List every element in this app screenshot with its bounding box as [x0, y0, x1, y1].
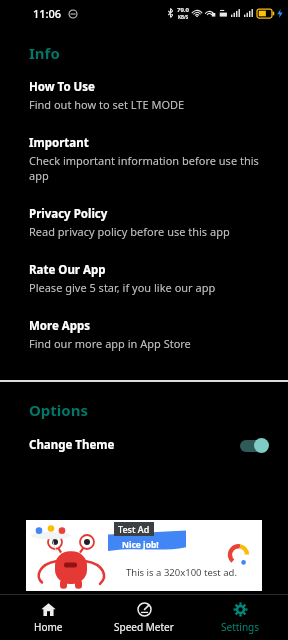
button[interactable]: Home	[0, 595, 96, 640]
staticText: Test Ad	[118, 523, 150, 535]
staticText: This is a 320x100 test ad.	[126, 566, 237, 579]
staticText: Settings	[221, 620, 260, 634]
button[interactable]: Privacy Policy	[0, 206, 288, 239]
staticText: Rate Our App	[29, 262, 106, 278]
staticText: KB/S	[178, 14, 189, 20]
button[interactable]: Change Theme	[0, 429, 288, 461]
staticText: Read privacy policy before use this app	[29, 224, 230, 239]
staticText: 11:06	[33, 6, 62, 21]
staticText: 79.0	[177, 6, 189, 14]
staticText: Options	[29, 400, 88, 420]
staticText: Find our more app in App Store	[29, 336, 191, 351]
button[interactable]: Important	[0, 135, 288, 183]
button[interactable]: More Apps	[0, 318, 288, 351]
staticText: How To Use	[29, 79, 95, 95]
staticText: Home	[34, 620, 63, 634]
staticText: Check important information before use t…	[29, 153, 259, 183]
staticText: Please give 5 star, if you like our app	[29, 280, 216, 295]
staticText: Speed Meter	[114, 620, 174, 634]
staticText: Find out how to set LTE MODE	[29, 97, 185, 112]
button[interactable]: Rate Our App	[0, 262, 288, 295]
button[interactable]: How To Use	[0, 79, 288, 112]
button[interactable]: Settings	[192, 595, 288, 640]
staticText: Change Theme	[29, 437, 115, 453]
staticText: Privacy Policy	[29, 206, 108, 222]
staticText: Nice job!	[122, 539, 159, 551]
staticText: Important	[29, 135, 89, 151]
staticText: More Apps	[29, 318, 91, 334]
staticText: Info	[29, 43, 60, 63]
button[interactable]: Speed Meter	[96, 595, 192, 640]
button[interactable]: Advertisement	[26, 520, 262, 591]
